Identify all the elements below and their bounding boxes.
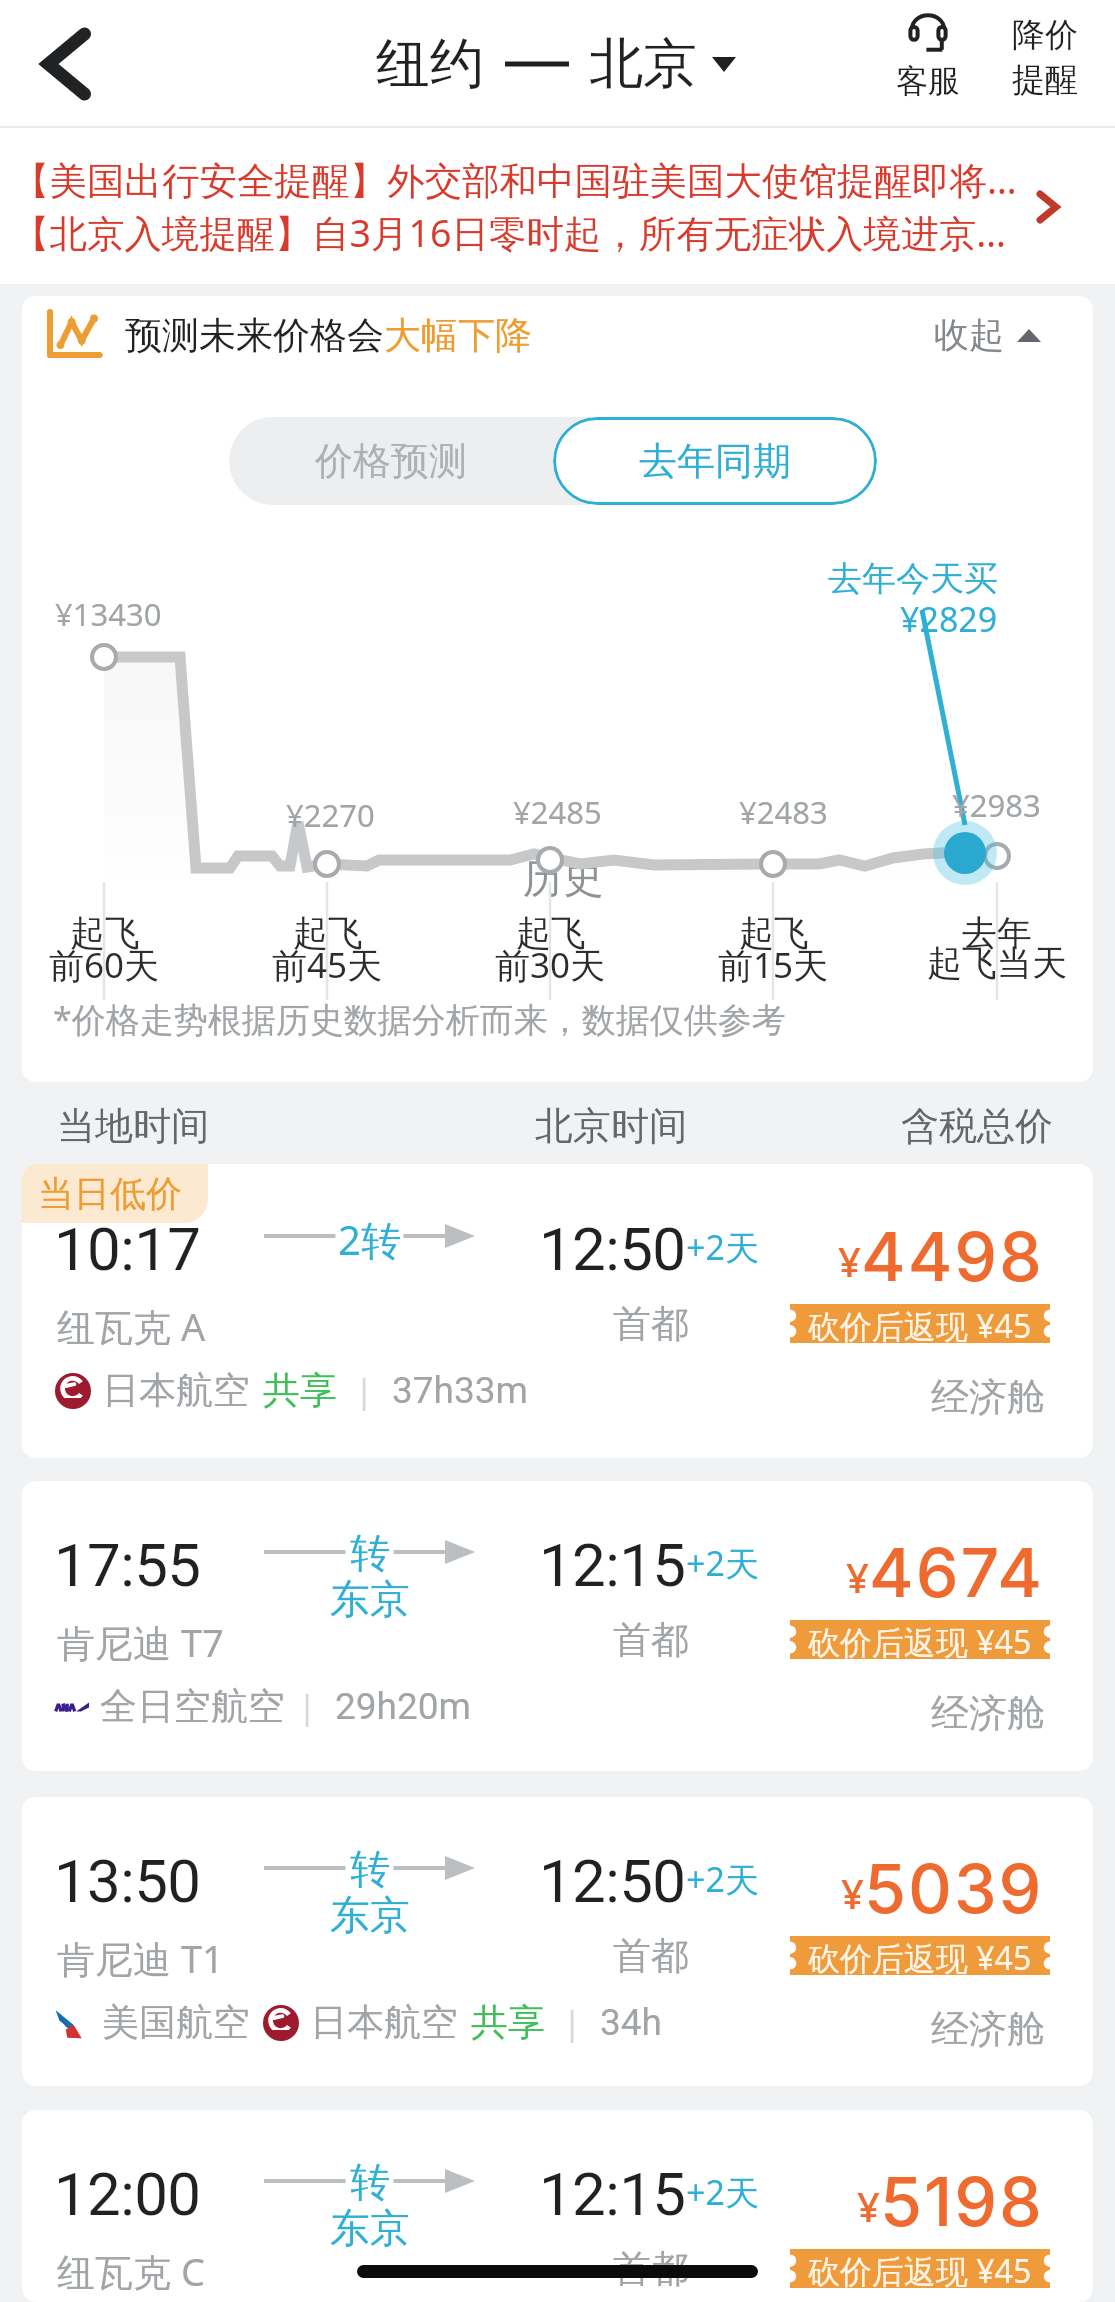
staticText: 日本航空: [310, 1999, 458, 2046]
staticText: 东京: [330, 2203, 410, 2253]
staticText: 起飞: [70, 911, 140, 955]
staticText: |: [298, 1684, 317, 1729]
staticText: ¥13430: [55, 593, 162, 635]
staticText: ¥2485: [513, 791, 602, 833]
staticText: 转: [350, 2157, 390, 2207]
staticText: 肯尼迪 T7: [57, 1616, 224, 1668]
staticText: 起飞: [516, 911, 586, 955]
staticText: 去年同期: [639, 437, 791, 485]
staticText: 去年今天买: [828, 557, 998, 600]
staticText: +2天: [686, 1856, 759, 1902]
staticText: 10:17: [54, 1214, 201, 1284]
staticText: |: [563, 2000, 582, 2045]
staticText: 全日空航空: [100, 1683, 285, 1730]
staticText: 前15天: [718, 941, 829, 989]
staticText: 29h20m: [335, 1685, 472, 1728]
staticText: 前30天: [495, 941, 606, 989]
staticText: 砍价后返现 ¥45: [808, 1936, 1032, 1975]
staticText: 客服: [896, 61, 960, 101]
staticText: 首都: [613, 1300, 689, 1348]
staticText: 起飞当天: [927, 941, 1067, 985]
staticText: +2天: [686, 1540, 759, 1586]
staticText: 转: [350, 1528, 390, 1578]
staticText: ¥2483: [739, 791, 828, 833]
staticText: 17:55: [54, 1530, 201, 1600]
staticText: 【美国出行安全提醒】外交部和中国驻美国大使馆提醒即将…: [12, 154, 1017, 205]
button[interactable]: 纽约: [366, 0, 746, 128]
staticText: 纽瓦克 C: [57, 2245, 205, 2297]
button[interactable]: 去年同期: [553, 417, 877, 505]
staticText: 5039: [864, 1847, 1044, 1929]
staticText: 砍价后返现 ¥45: [808, 1620, 1032, 1659]
staticText: 4674: [869, 1531, 1044, 1613]
staticText: 4498: [861, 1215, 1044, 1297]
staticText: 共享: [263, 1367, 337, 1414]
staticText: ¥: [838, 1234, 861, 1288]
staticText: 首都: [613, 2245, 689, 2293]
staticText: 历史: [523, 853, 603, 903]
staticText: 美国航空: [102, 1999, 250, 2046]
staticText: 东京: [330, 1890, 410, 1940]
staticText: 12:50: [539, 1214, 686, 1284]
staticText: 经济舱: [931, 1689, 1045, 1737]
staticText: 【北京入境提醒】自3月16日零时起，所有无症状入境进京…: [12, 207, 1007, 258]
staticText: 前60天: [49, 941, 160, 989]
staticText: 当地时间: [57, 1102, 209, 1150]
staticText: ¥: [857, 2179, 880, 2233]
staticText: *价格走势根据历史数据分析而来，数据仅供参考: [53, 996, 786, 1042]
staticText: 前45天: [272, 941, 383, 989]
staticText: 砍价后返现 ¥45: [808, 2249, 1032, 2288]
staticText: 12:00: [54, 2159, 201, 2229]
button[interactable]: 12:00: [22, 2110, 1093, 2302]
staticText: 起飞: [293, 911, 363, 955]
staticText: 预测未来价格会大幅下降: [125, 312, 532, 359]
staticText: 12:50: [539, 1846, 686, 1916]
staticText: 转: [350, 1844, 390, 1894]
button[interactable]: 价格预测: [229, 417, 553, 505]
staticText: 肯尼迪 T1: [57, 1932, 224, 1984]
button[interactable]: 13:50: [22, 1797, 1093, 2086]
staticText: 12:15: [539, 2159, 686, 2229]
staticText: 纽瓦克 A: [57, 1300, 206, 1352]
staticText: ¥2829: [900, 596, 998, 642]
staticText: 北京: [589, 30, 697, 98]
button[interactable]: 【美国出行安全提醒】外交部和中国驻美国大使馆提醒即将…: [0, 128, 1115, 284]
button[interactable]: 收起: [928, 303, 1043, 367]
staticText: 5198: [880, 2160, 1044, 2242]
staticText: +2天: [686, 1224, 759, 1270]
staticText: 37h33m: [392, 1369, 529, 1412]
staticText: 含税总价: [901, 1102, 1053, 1150]
staticText: ¥: [841, 1866, 864, 1920]
button[interactable]: 降价: [1002, 0, 1088, 128]
staticText: ¥2983: [952, 784, 1041, 826]
staticText: 13:50: [54, 1846, 201, 1916]
staticText: 共享: [471, 1999, 545, 2046]
staticText: 砍价后返现 ¥45: [808, 1304, 1032, 1343]
staticText: |: [355, 1368, 374, 1413]
staticText: 经济舱: [931, 1373, 1045, 1421]
button[interactable]: 返回 Back: [10, 0, 122, 128]
staticText: 首都: [613, 1932, 689, 1980]
button[interactable]: 17:55: [22, 1481, 1093, 1771]
staticText: 降价: [1012, 14, 1078, 56]
staticText: 纽约: [376, 30, 484, 98]
staticText: 价格预测: [315, 437, 467, 485]
staticText: 日本航空: [102, 1367, 250, 1414]
button[interactable]: 客服: [880, 0, 976, 128]
staticText: 2转: [338, 1212, 401, 1267]
staticText: 12:15: [539, 1530, 686, 1600]
staticText: +2天: [686, 2169, 759, 2215]
staticText: 收起: [934, 313, 1004, 357]
staticText: 去年: [962, 911, 1032, 955]
staticText: ¥: [846, 1550, 869, 1604]
staticText: 提醒: [1012, 59, 1078, 101]
staticText: 34h: [600, 2001, 662, 2044]
staticText: 北京时间: [535, 1102, 687, 1150]
staticText: 当日低价: [38, 1171, 182, 1216]
staticText: 经济舱: [931, 2005, 1045, 2053]
button[interactable]: 当日低价: [22, 1164, 1093, 1458]
staticText: 起飞: [739, 911, 809, 955]
staticText: 东京: [330, 1574, 410, 1624]
staticText: ¥2270: [286, 794, 375, 836]
staticText: 首都: [613, 1616, 689, 1664]
